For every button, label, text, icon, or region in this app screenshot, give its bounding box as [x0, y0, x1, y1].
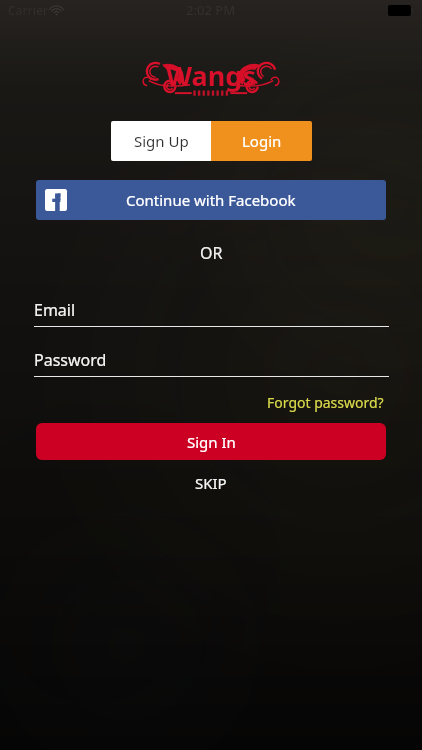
staticText: Sign In	[187, 432, 236, 452]
staticText: SKIP	[195, 473, 227, 493]
button[interactable]: Password	[34, 349, 389, 377]
staticText: OR	[200, 242, 223, 264]
staticText: Password	[34, 349, 107, 371]
button[interactable]: SKIP	[179, 470, 243, 496]
staticText: Continue with Facebook	[126, 190, 296, 210]
staticText: Forgot password?	[267, 393, 384, 412]
staticText: 2:02 PM	[186, 1, 236, 19]
staticText: Sign Up	[134, 131, 189, 151]
button[interactable]: Sign Up	[111, 121, 211, 161]
staticText: Carrier	[8, 2, 48, 18]
button[interactable]: Email	[34, 299, 389, 327]
staticText: Wangs	[166, 57, 256, 94]
button[interactable]: Sign In	[36, 423, 386, 460]
button[interactable]: Login	[211, 121, 312, 161]
staticText: Login	[242, 131, 282, 151]
button[interactable]: Forgot password?	[267, 393, 384, 412]
button[interactable]: Continue with Facebook	[36, 180, 386, 220]
staticText: Email	[34, 299, 76, 321]
